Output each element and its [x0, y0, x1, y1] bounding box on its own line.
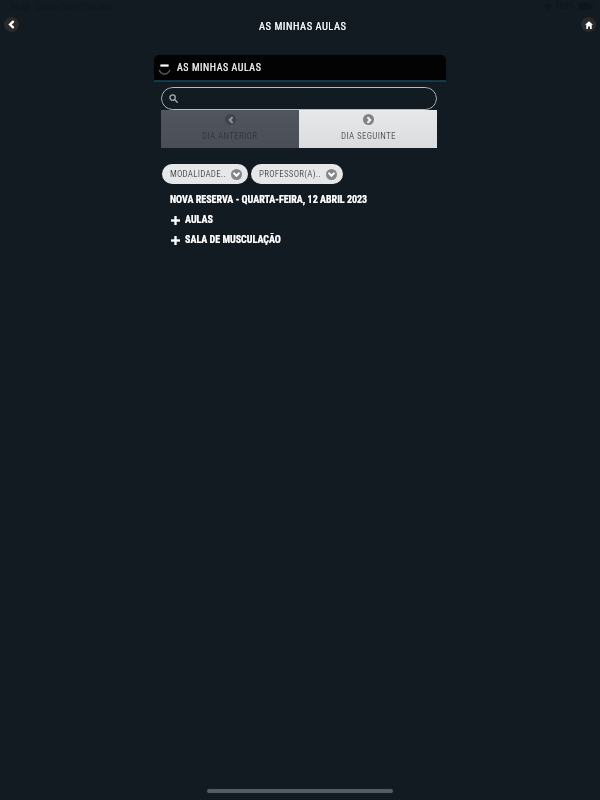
- staticText: AS MINHAS AULAS: [259, 20, 347, 32]
- button[interactable]: PROFESSOR(A)..: [251, 164, 343, 184]
- staticText: AS MINHAS AULAS: [177, 62, 262, 74]
- staticText: DIA ANTERIOR: [202, 131, 258, 142]
- staticText: NOVA RESERVA - QUARTA-FEIRA, 12 ABRIL 20…: [170, 194, 368, 206]
- button[interactable]: AULAS: [171, 214, 213, 226]
- button[interactable]: Back: [0, 13, 23, 36]
- button[interactable]: DIA SEGUINTE: [299, 110, 437, 148]
- staticText: MODALIDADE..: [170, 169, 226, 180]
- staticText: AULAS: [185, 214, 213, 226]
- button[interactable]: DIA ANTERIOR: [161, 110, 299, 148]
- staticText: SALA DE MUSCULAÇÃO: [185, 234, 281, 246]
- button[interactable]: SALA DE MUSCULAÇÃO: [171, 234, 281, 246]
- button[interactable]: Home: [577, 13, 600, 36]
- staticText: DIA SEGUINTE: [341, 131, 396, 142]
- button[interactable]: AS MINHAS AULAS: [154, 55, 446, 80]
- staticText: PROFESSOR(A)..: [259, 169, 321, 180]
- button[interactable]: [161, 87, 437, 110]
- button[interactable]: MODALIDADE..: [162, 164, 248, 184]
